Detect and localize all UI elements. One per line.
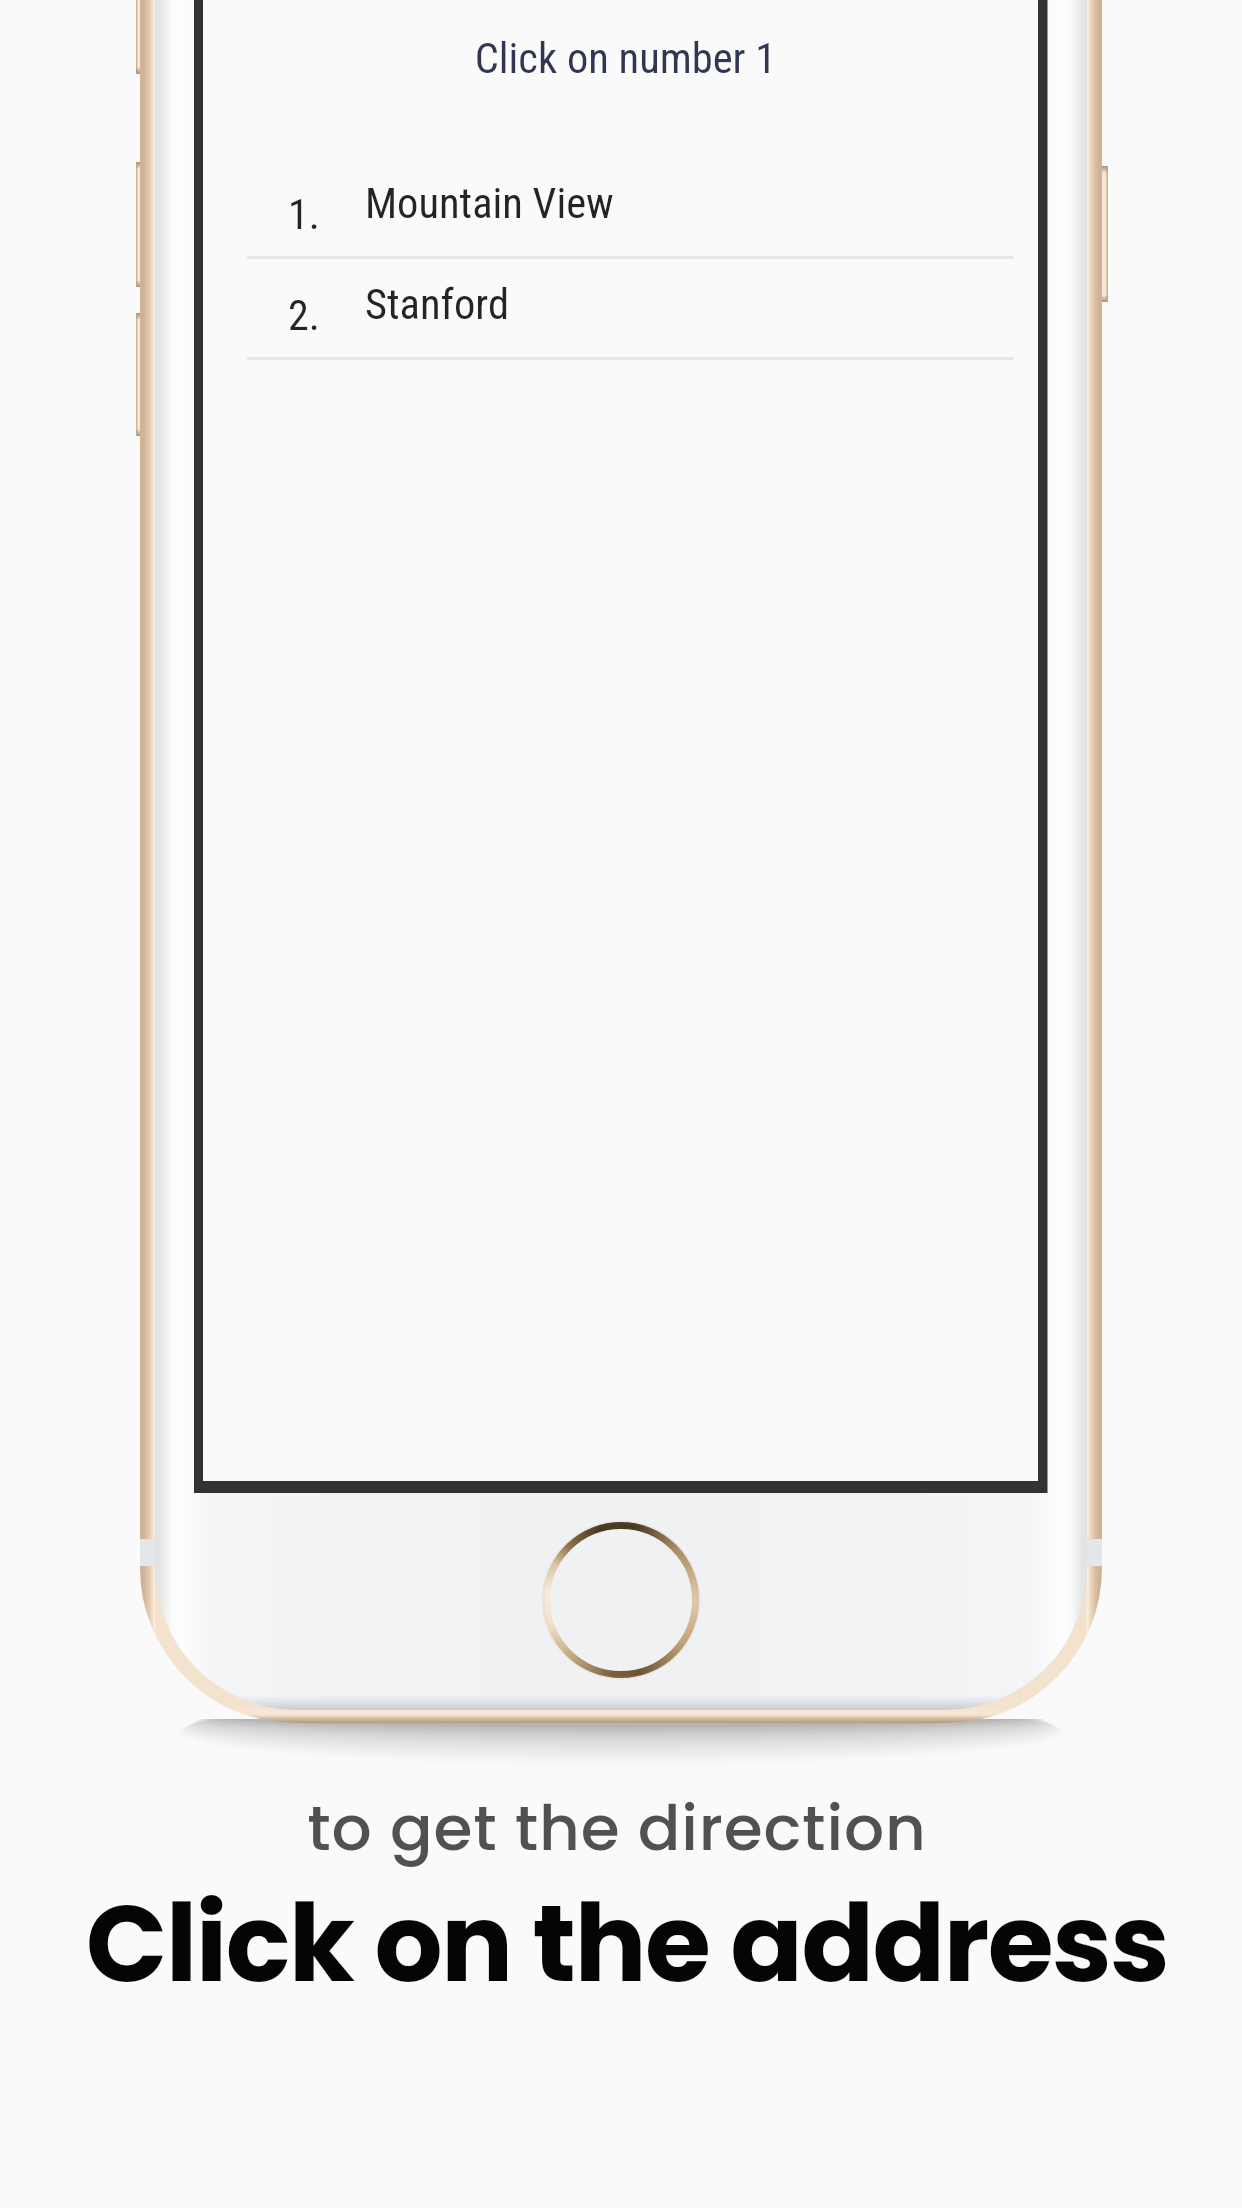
staticText: 2. xyxy=(288,291,320,340)
staticText: Stanford xyxy=(365,280,509,330)
staticText: Click on number 1 xyxy=(208,34,1043,84)
staticText: to get the direction xyxy=(0,1784,1238,1872)
staticText: Mountain View xyxy=(365,179,614,229)
button[interactable]: 2. Stanford xyxy=(203,259,1038,360)
button[interactable]: 1. Mountain View xyxy=(203,158,1038,259)
staticText: 1. xyxy=(288,190,320,239)
staticText: Click on the address xyxy=(6,1869,1242,2019)
